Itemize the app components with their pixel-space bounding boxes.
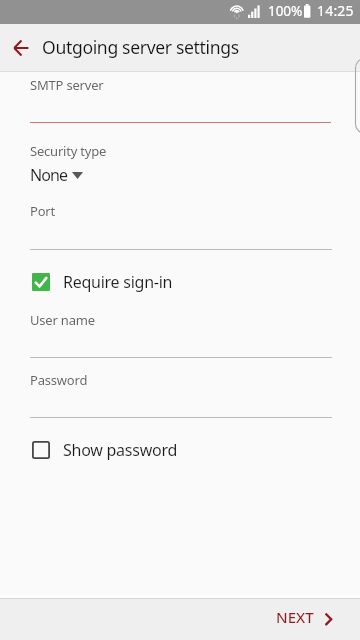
staticText: Outgoing server settings xyxy=(42,35,239,59)
staticText: Security type xyxy=(30,142,107,160)
staticText: Password xyxy=(30,371,88,389)
staticText: Require sign-in xyxy=(63,271,173,293)
staticText: Port xyxy=(30,202,55,220)
staticText: Show password xyxy=(63,439,178,461)
button[interactable]: None xyxy=(30,164,83,183)
staticText: 14:25 xyxy=(317,1,354,20)
button[interactable]: NEXT xyxy=(276,599,360,640)
staticText: NEXT xyxy=(276,607,314,627)
staticText: 100% xyxy=(268,1,303,20)
button[interactable]: Require sign-in xyxy=(0,268,360,295)
staticText: SMTP server xyxy=(30,76,104,94)
button[interactable]: Show password xyxy=(0,436,360,463)
button[interactable]: Navigate up xyxy=(5,32,37,64)
staticText: User name xyxy=(30,311,95,329)
staticText: None xyxy=(30,164,68,183)
